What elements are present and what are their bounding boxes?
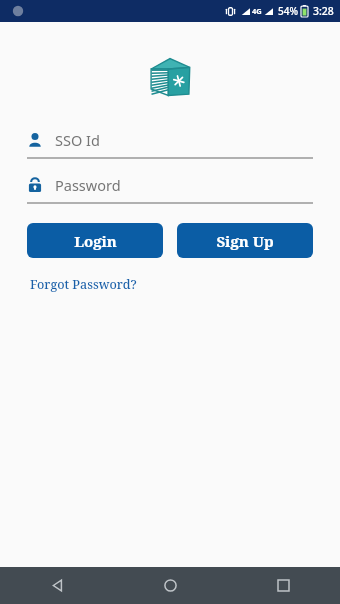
staticText: 3:28	[313, 4, 334, 18]
staticText: Login	[74, 231, 117, 251]
button[interactable]: Home	[114, 567, 227, 604]
staticText: 54%	[278, 4, 298, 18]
button[interactable]: Forgot Password?	[28, 274, 139, 295]
staticText: SSO Id	[55, 130, 100, 150]
button[interactable]: User	[27, 126, 313, 159]
staticText: Forgot Password?	[30, 276, 137, 293]
staticText: Sign Up	[216, 231, 274, 251]
button[interactable]: Password	[27, 171, 313, 204]
button[interactable]: Back	[0, 567, 114, 604]
button[interactable]: Recent apps	[227, 567, 340, 604]
staticText: 4G	[252, 6, 262, 16]
button[interactable]: Sign Up	[177, 223, 313, 258]
button[interactable]: Login	[27, 223, 163, 258]
staticText: Password	[55, 175, 121, 195]
